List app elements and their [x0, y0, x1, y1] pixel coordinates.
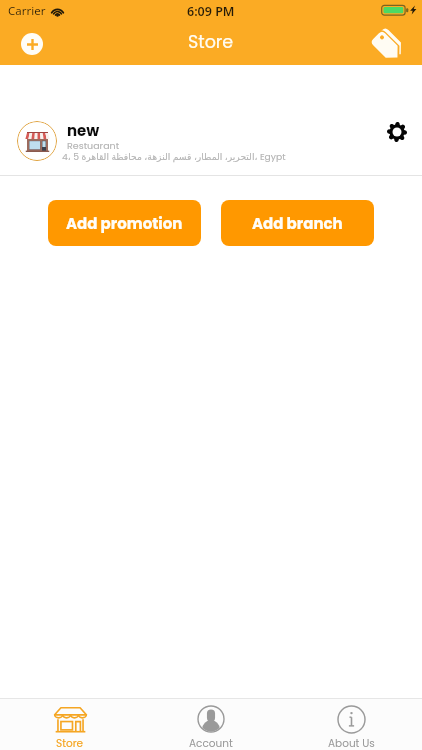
staticText: 4، 5 التحرير، المطار، قسم النزهة، محافظة… [62, 150, 286, 163]
button[interactable]: About Us [281, 699, 422, 750]
staticText: 6:09 PM [187, 3, 235, 20]
button[interactable]: Store [0, 699, 140, 750]
staticText: Store [188, 30, 234, 55]
staticText: Account [189, 736, 233, 750]
staticText: new [67, 120, 100, 141]
button[interactable]: Add branch [221, 200, 374, 246]
staticText: About Us [328, 736, 375, 750]
staticText: Store [56, 736, 84, 750]
staticText: Restuarant [67, 139, 120, 152]
button[interactable]: Add store [10, 22, 54, 65]
button[interactable]: Offers [366, 22, 410, 65]
button[interactable]: Account [140, 699, 281, 750]
staticText: Add promotion [66, 213, 183, 234]
button[interactable]: new [0, 65, 422, 175]
button[interactable]: Add promotion [48, 200, 201, 246]
staticText: Add branch [252, 213, 343, 234]
staticText: Carrier [8, 3, 46, 19]
button[interactable]: Settings [380, 115, 414, 149]
